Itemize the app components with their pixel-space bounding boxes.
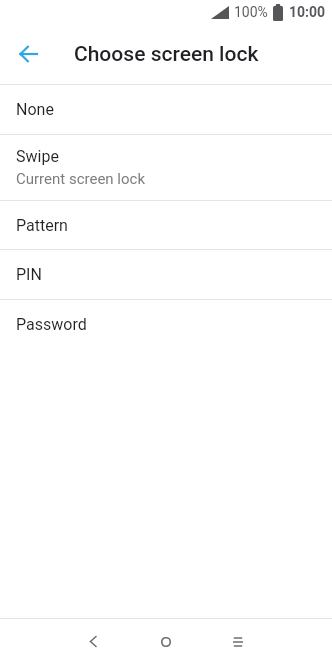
staticText: Choose screen lock	[74, 42, 259, 67]
staticText: Pattern	[16, 216, 68, 235]
button[interactable]	[0, 26, 56, 82]
staticText: Current screen lock	[16, 170, 146, 188]
button[interactable]	[214, 619, 262, 664]
staticText: Swipe	[16, 147, 59, 166]
staticText: PIN	[16, 265, 42, 284]
button[interactable]: Password	[0, 300, 332, 349]
button[interactable]	[142, 619, 190, 664]
staticText: None	[16, 100, 54, 119]
button[interactable]: Pattern	[0, 201, 332, 249]
staticText: 10:00	[289, 4, 326, 20]
staticText: 100%	[234, 4, 268, 20]
button[interactable]: None	[0, 85, 332, 134]
button[interactable]	[69, 619, 117, 664]
button[interactable]: PIN	[0, 250, 332, 299]
staticText: Password	[16, 315, 87, 334]
button[interactable]: Swipe	[0, 135, 332, 200]
